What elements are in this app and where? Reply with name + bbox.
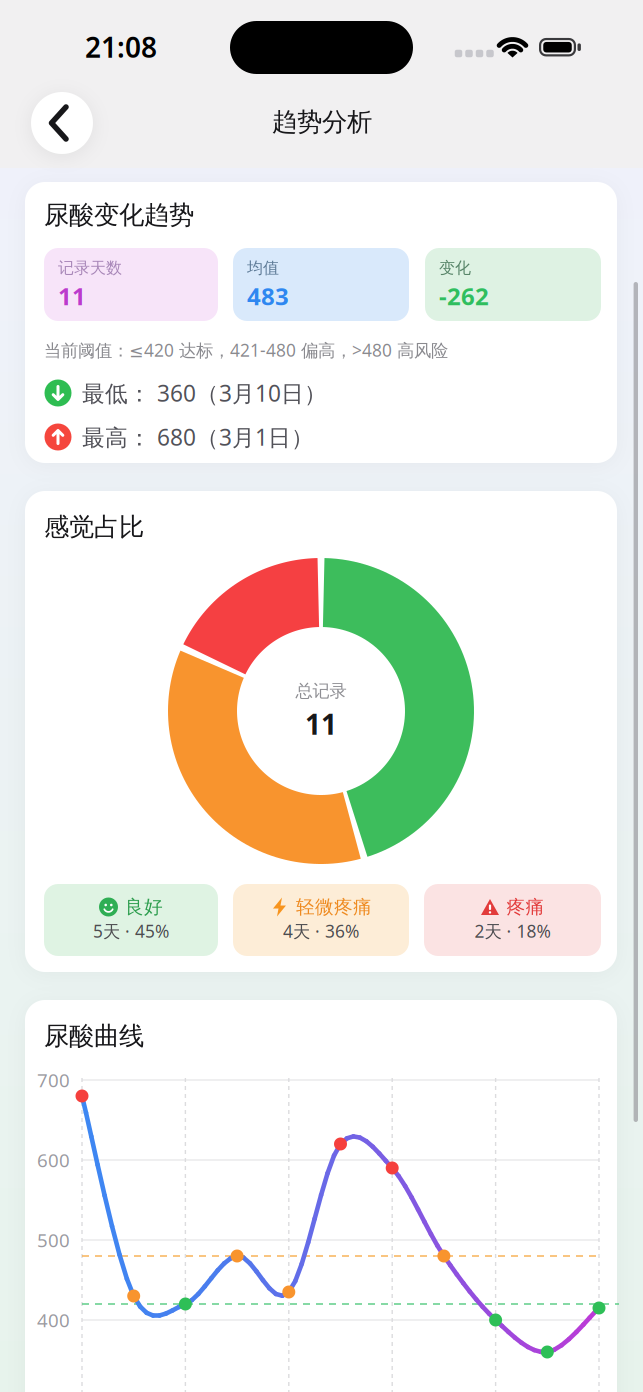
staticText: 趋势分析 [272,106,372,137]
staticText: 尿酸变化趋势 [44,199,194,230]
staticText: 当前阈值：≤420 达标，421-480 偏高，>480 高风险 [44,338,448,361]
staticText: 总记录 [295,680,346,702]
staticText: 最高： 680（3月1日） [82,422,314,452]
staticText: 良好 [125,895,163,918]
staticText: 11 [58,280,86,312]
staticText: 483 [247,280,289,312]
staticText: 2天 · 18% [474,919,550,942]
staticText: 均值 [247,258,279,278]
staticText: 最低： 360（3月10日） [82,378,327,408]
staticText: 21:08 [85,28,157,66]
staticText: 疼痛 [506,895,544,918]
staticText: 11 [305,705,337,743]
staticText: 700 [37,1068,70,1092]
button[interactable]: Back [31,92,93,154]
staticText: 600 [37,1148,70,1172]
staticText: 变化 [439,258,471,278]
staticText: 轻微疼痛 [296,895,372,918]
staticText: 5天 · 45% [93,919,169,942]
staticText: -262 [439,280,489,312]
staticText: 500 [37,1228,70,1252]
staticText: 400 [37,1308,70,1332]
staticText: 记录天数 [58,258,122,278]
staticText: 4天 · 36% [283,919,359,942]
staticText: 感觉占比 [44,511,144,542]
staticText: 尿酸曲线 [44,1020,144,1051]
